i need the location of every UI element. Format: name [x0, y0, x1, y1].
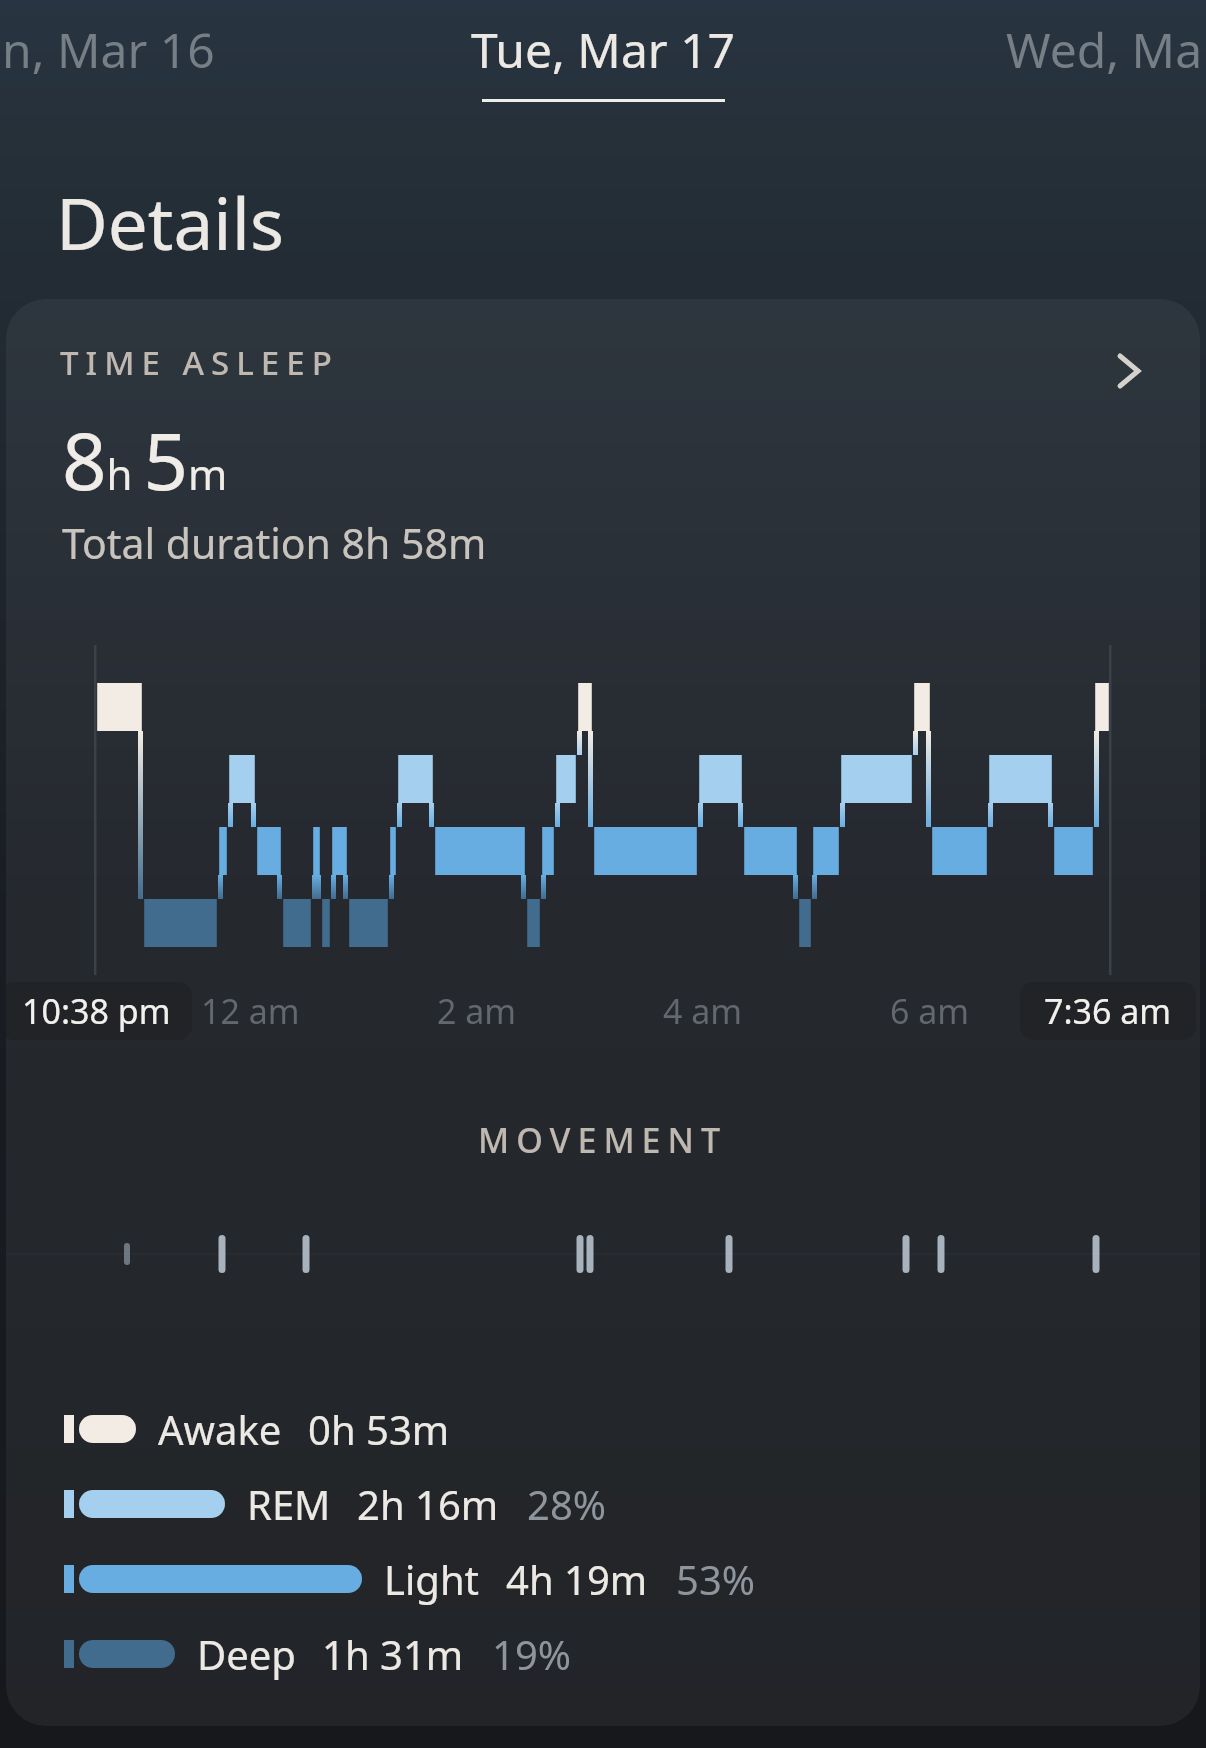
- staticText: Deep: [197, 1627, 296, 1681]
- staticText: REM: [247, 1477, 331, 1531]
- staticText: Total duration 8h 58m: [62, 515, 487, 571]
- button[interactable]: Tue, Mar 17: [471, 17, 736, 102]
- staticText: Tue, Mar 17: [471, 17, 736, 82]
- button[interactable]: Deep: [64, 1627, 571, 1681]
- button[interactable]: n, Mar 16: [2, 17, 215, 82]
- staticText: Light: [384, 1552, 480, 1606]
- staticText: Details: [56, 174, 284, 271]
- staticText: 4 am: [663, 988, 743, 1034]
- staticText: 19%: [492, 1627, 571, 1681]
- staticText: 7:36 am: [1044, 988, 1172, 1034]
- staticText: 10:38 pm: [22, 988, 171, 1034]
- staticText: 53%: [676, 1552, 755, 1606]
- staticText: 28%: [527, 1477, 606, 1531]
- button[interactable]: 10:38 pm: [6, 982, 192, 1040]
- staticText: TIME ASLEEP: [60, 340, 339, 385]
- button[interactable]: [1100, 349, 1144, 393]
- button[interactable]: REM: [64, 1477, 606, 1531]
- button[interactable]: Wed, Mar: [1006, 17, 1206, 82]
- button[interactable]: 7:36 am: [1020, 982, 1196, 1040]
- button[interactable]: Awake: [64, 1402, 450, 1456]
- staticText: 4h 19m: [506, 1552, 648, 1606]
- staticText: 6 am: [890, 988, 970, 1034]
- button[interactable]: Light: [64, 1552, 755, 1606]
- button[interactable]: TIME ASLEEP: [6, 299, 1200, 1726]
- staticText: 0h 53m: [308, 1402, 450, 1456]
- staticText: 1h 31m: [322, 1627, 464, 1681]
- staticText: Awake: [158, 1402, 282, 1456]
- staticText: 2h 16m: [357, 1477, 499, 1531]
- staticText: 12 am: [201, 988, 300, 1034]
- staticText: 2 am: [437, 988, 517, 1034]
- staticText: 8h 5m: [62, 407, 228, 513]
- staticText: MOVEMENT: [478, 1117, 728, 1163]
